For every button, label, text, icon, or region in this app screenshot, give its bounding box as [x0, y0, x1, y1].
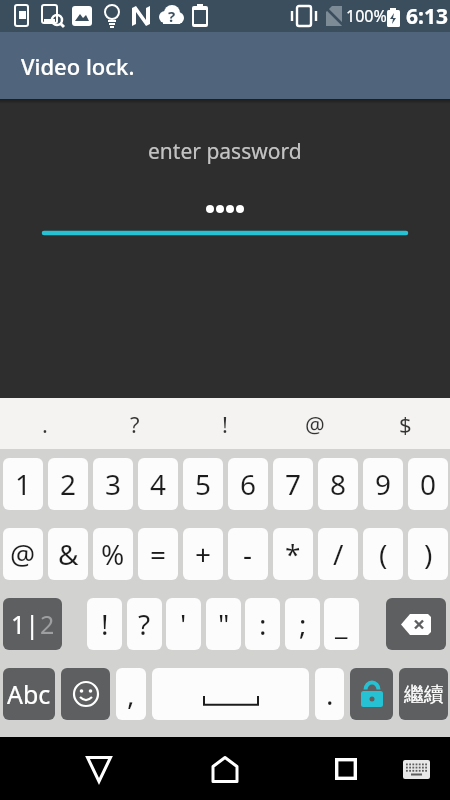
staticText: @ [305, 409, 325, 439]
staticText: ( [379, 535, 388, 573]
staticText: + [195, 535, 212, 573]
staticText: % [101, 535, 125, 573]
button[interactable]: 8 [318, 458, 358, 510]
button[interactable]: . [315, 668, 344, 720]
staticText: 2 [40, 607, 55, 641]
staticText: 7 [285, 465, 302, 503]
button[interactable]: 4 [138, 458, 178, 510]
staticText: ! [101, 605, 109, 643]
button[interactable]: ! [87, 598, 122, 650]
button[interactable]: $ [360, 398, 450, 449]
button[interactable]: 1 [3, 458, 43, 510]
staticText: 6 [240, 465, 257, 503]
staticText: ? [138, 605, 151, 643]
staticText: ' [180, 605, 187, 643]
staticText: 繼續 [404, 682, 444, 707]
staticText: 5 [195, 465, 212, 503]
button[interactable] [201, 745, 249, 793]
button[interactable]: ; [285, 598, 320, 650]
staticText: ? [168, 6, 176, 26]
button[interactable]: / [318, 528, 358, 580]
staticText: : [259, 605, 267, 643]
staticText: 0 [420, 465, 437, 503]
button[interactable]: & [48, 528, 88, 580]
staticText: = [150, 535, 167, 573]
button[interactable] [322, 745, 370, 793]
staticText: & [58, 535, 79, 573]
staticText: Abc [7, 677, 51, 711]
staticText: @ [10, 535, 36, 573]
staticText: , [127, 675, 135, 713]
button[interactable]: : [245, 598, 280, 650]
staticText: 2 [60, 465, 77, 503]
button[interactable]: 5 [183, 458, 223, 510]
staticText: 9 [375, 465, 392, 503]
button[interactable]: ? [90, 398, 180, 449]
staticText: . [326, 675, 334, 713]
button[interactable]: 1| [3, 598, 62, 650]
button[interactable]: 7 [273, 458, 313, 510]
staticText: ; [299, 605, 307, 643]
button[interactable]: @ [270, 398, 360, 449]
button[interactable]: , [116, 668, 146, 720]
button[interactable]: Abc [3, 668, 55, 720]
staticText: 1| [11, 607, 40, 641]
button[interactable]: = [138, 528, 178, 580]
staticText: ! [222, 409, 228, 439]
button[interactable]: % [93, 528, 133, 580]
staticText: / [333, 535, 344, 573]
button[interactable]: 6 [228, 458, 268, 510]
button[interactable] [396, 749, 436, 789]
staticText: 4 [150, 465, 167, 503]
button[interactable]: 2 [48, 458, 88, 510]
button[interactable]: . [0, 398, 90, 449]
button[interactable] [152, 668, 309, 720]
staticText: ? [130, 409, 140, 439]
button[interactable]: + [183, 528, 223, 580]
staticText: _ [335, 605, 348, 643]
staticText: 1 [15, 465, 32, 503]
button[interactable]: _ [324, 598, 359, 650]
staticText: Video lock. [21, 51, 135, 81]
button[interactable] [386, 598, 446, 650]
staticText: * [285, 535, 301, 573]
staticText: - [243, 535, 253, 573]
button[interactable]: - [228, 528, 268, 580]
button[interactable]: 0 [408, 458, 448, 510]
staticText: 8 [330, 465, 347, 503]
button[interactable] [61, 668, 110, 720]
button[interactable]: " [206, 598, 241, 650]
button[interactable]: ( [363, 528, 403, 580]
staticText: . [42, 409, 48, 439]
button[interactable]: @ [3, 528, 43, 580]
staticText: 6:13 [406, 2, 448, 31]
staticText: $ [399, 409, 412, 439]
button[interactable]: ' [166, 598, 201, 650]
button[interactable]: ) [408, 528, 448, 580]
button[interactable]: 3 [93, 458, 133, 510]
button[interactable] [350, 668, 393, 720]
staticText: enter password [148, 137, 302, 166]
button[interactable]: 繼續 [399, 668, 448, 720]
button[interactable] [75, 745, 123, 793]
button[interactable]: 9 [363, 458, 403, 510]
staticText: 100% [346, 5, 387, 27]
button[interactable]: ? [127, 598, 162, 650]
button[interactable]: Video lock. [0, 32, 450, 99]
button[interactable]: * [273, 528, 313, 580]
staticText: 3 [105, 465, 122, 503]
button[interactable]: ! [180, 398, 270, 449]
staticText: ) [424, 535, 433, 573]
staticText: " [218, 605, 230, 643]
